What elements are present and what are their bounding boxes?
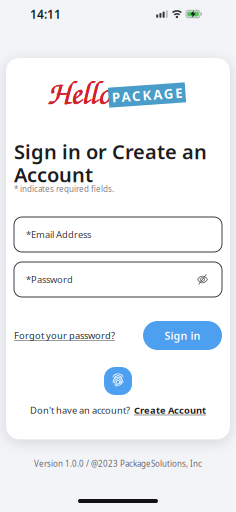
button[interactable]: Show password bbox=[197, 274, 208, 285]
staticText: *Password bbox=[26, 273, 73, 286]
staticText: *Email Address bbox=[26, 228, 91, 241]
staticText: Don't have an account? bbox=[30, 404, 130, 416]
staticText: Hello bbox=[47, 70, 110, 113]
staticText: 14:11 bbox=[30, 6, 61, 22]
staticText: Sign in bbox=[164, 328, 200, 343]
staticText: Forgot your password? bbox=[14, 329, 115, 342]
staticText: Hello bbox=[47, 70, 110, 114]
staticText: Hello bbox=[47, 70, 110, 113]
staticText: Sign in or Create an bbox=[14, 138, 207, 165]
staticText: Version 1.0.0 / @2023 PackageSolutions, … bbox=[34, 458, 202, 469]
button[interactable]: Create Account bbox=[134, 404, 206, 416]
button[interactable]: Sign in bbox=[143, 321, 222, 350]
staticText: PACKAGE bbox=[112, 86, 182, 104]
staticText: Account bbox=[14, 161, 93, 188]
staticText: Create Account bbox=[134, 404, 206, 416]
button[interactable]: Sign in with Touch ID bbox=[104, 367, 132, 395]
button[interactable]: Forgot your password? bbox=[14, 329, 115, 342]
staticText: * indicates required fields. bbox=[14, 184, 114, 194]
